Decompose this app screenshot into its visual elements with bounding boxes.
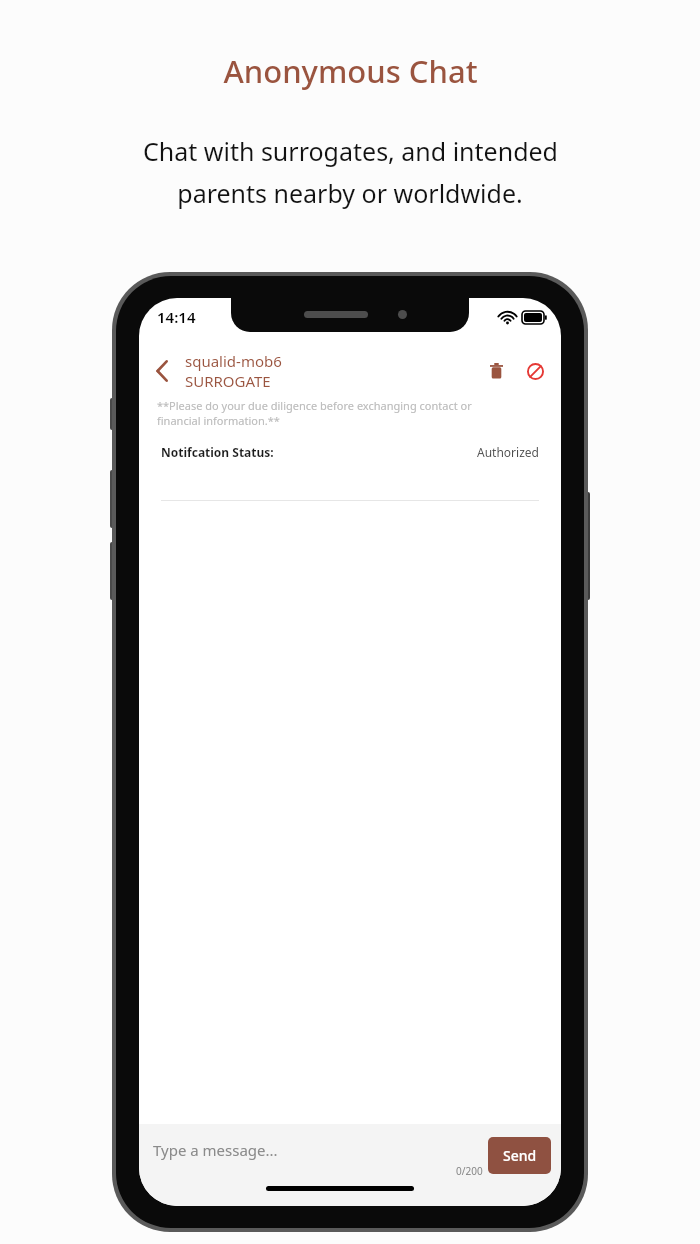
- staticText: Send: [503, 1146, 537, 1165]
- button[interactable]: Type a message...: [153, 1140, 278, 1160]
- staticText: parents nearby or worldwide.: [177, 176, 523, 210]
- button[interactable]: Back: [139, 350, 185, 392]
- staticText: SURROGATE: [185, 371, 271, 391]
- button[interactable]: Block user: [515, 352, 555, 390]
- staticText: Notifcation Status:: [161, 444, 274, 460]
- staticText: 14:14: [157, 307, 196, 327]
- staticText: Authorized: [477, 444, 539, 460]
- staticText: Anonymous Chat: [223, 50, 478, 92]
- staticText: squalid-mob6: [185, 351, 282, 371]
- staticText: Chat with surrogates, and intended: [143, 134, 558, 168]
- button[interactable]: Send: [488, 1137, 551, 1174]
- staticText: 0/200: [456, 1164, 483, 1178]
- staticText: **Please do your due diligence before ex…: [157, 398, 472, 428]
- button[interactable]: Delete conversation: [477, 352, 515, 390]
